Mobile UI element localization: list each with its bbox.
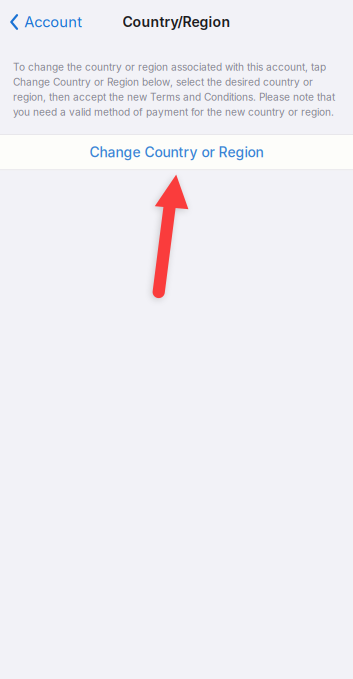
staticText: Country/Region <box>122 13 230 30</box>
staticText: Change Country or Region <box>89 144 263 161</box>
button[interactable]: Account <box>0 1 90 43</box>
staticText: Account <box>24 13 82 31</box>
button[interactable]: Change Country or Region <box>0 134 353 170</box>
staticText: To change the country or region associat… <box>13 61 335 118</box>
